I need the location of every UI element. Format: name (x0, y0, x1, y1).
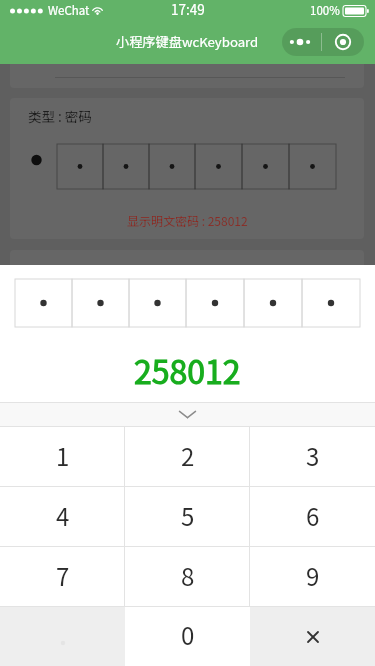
staticText: 2 (181, 438, 195, 473)
button[interactable]: Digit 4 (186, 279, 244, 327)
button[interactable]: 7 (0, 547, 125, 607)
button[interactable]: Digit 2 (72, 279, 129, 327)
staticText: 小程序键盘wcKeyboard (116, 32, 259, 51)
staticText: 显示明文密码 : 258012 (127, 212, 248, 229)
staticText: 258012 (134, 347, 241, 393)
staticText: 1 (56, 438, 70, 473)
staticText: 0 (181, 617, 195, 652)
button[interactable]: 9 (250, 547, 375, 607)
staticText: 9 (306, 558, 320, 593)
button[interactable]: 0 (125, 607, 250, 666)
other: Menu (282, 28, 321, 56)
staticText: 8 (181, 558, 195, 593)
button[interactable]: Digit 6 (302, 279, 360, 327)
staticText: 5 (181, 498, 195, 533)
staticText: 3 (306, 438, 320, 473)
staticText: 100% (310, 2, 340, 19)
button[interactable]: 3 (250, 427, 375, 487)
other: Close (322, 28, 364, 56)
button[interactable]: 8 (125, 547, 250, 607)
button[interactable]: 2 (125, 427, 250, 487)
staticText: 7 (56, 558, 70, 593)
button[interactable]: Delete (250, 607, 375, 666)
staticText: WeChat (48, 2, 90, 19)
button[interactable]: Hide keyboard (0, 402, 375, 427)
button[interactable]: More options (282, 28, 364, 56)
button[interactable]: 5 (125, 487, 250, 547)
button[interactable]: 1 (0, 427, 125, 487)
staticText: 17:49 (171, 0, 205, 19)
button[interactable]: Digit 3 (129, 279, 186, 327)
button[interactable]: 4 (0, 487, 125, 547)
button[interactable]: 6 (250, 487, 375, 547)
button[interactable]: Digit 5 (244, 279, 302, 327)
button[interactable]: Digit 1 (15, 279, 72, 327)
staticText: 6 (306, 498, 320, 533)
staticText: 类型 : 密码 (28, 106, 92, 126)
staticText: 4 (56, 498, 70, 533)
